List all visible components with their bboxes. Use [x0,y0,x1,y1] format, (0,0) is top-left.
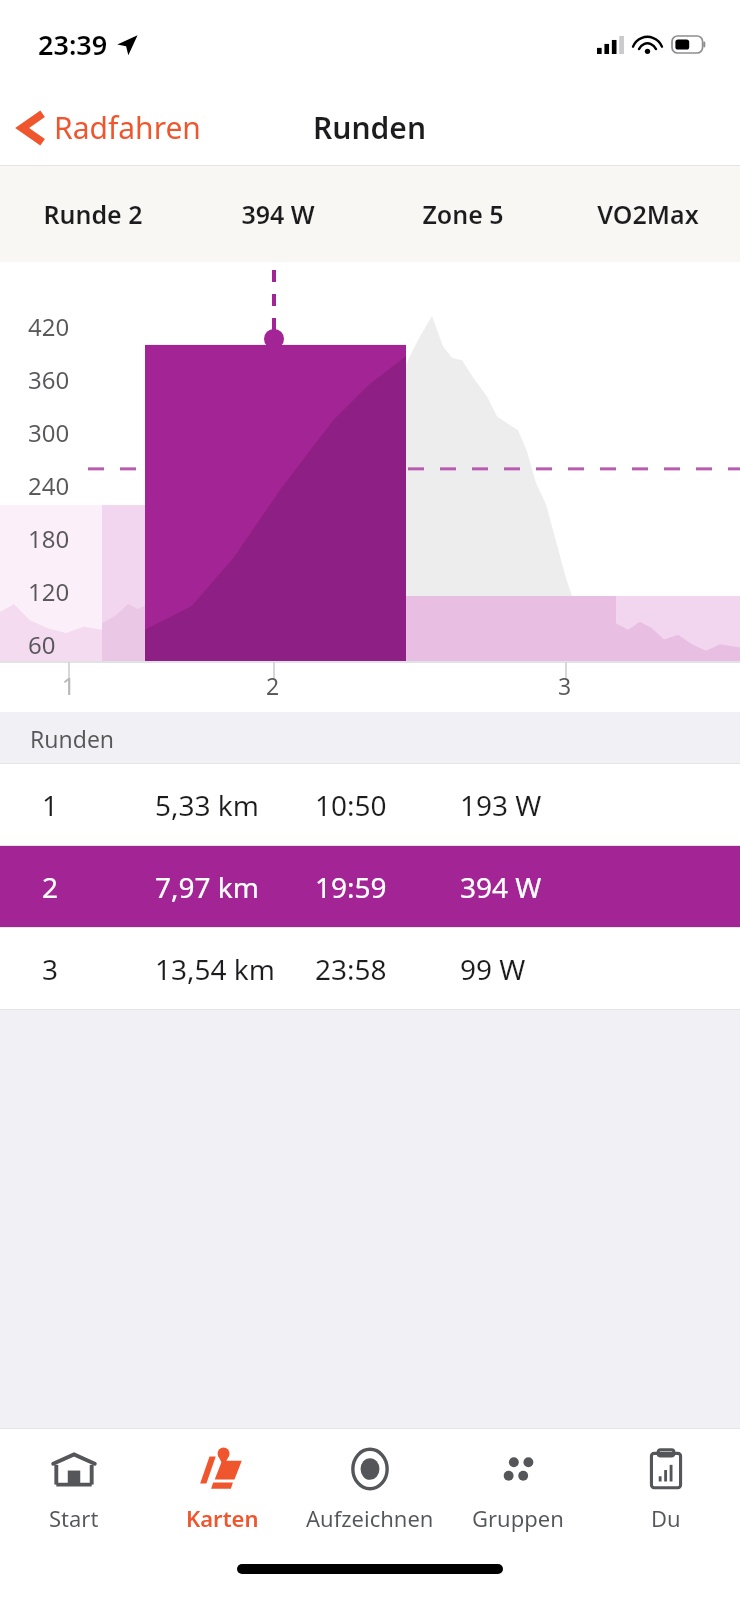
button[interactable]: Aufzeichnen [296,1429,444,1533]
button[interactable]: 2 [0,846,740,927]
staticText: 120 [28,575,70,608]
button[interactable]: Du [592,1429,740,1533]
staticText: 2 [266,670,280,701]
staticText: Gruppen [472,1503,564,1533]
staticText: 394 W [241,197,315,231]
staticText: 2 [42,868,59,906]
button[interactable]: Karten [148,1429,296,1533]
staticText: 23:58 [315,950,387,988]
staticText: Du [651,1503,681,1533]
staticText: 99 W [460,950,526,988]
button[interactable]: Radfahren [0,99,215,156]
staticText: Runden [30,723,115,754]
staticText: 180 [28,522,70,555]
button[interactable]: Start [0,1429,148,1533]
staticText: 23:39 [38,26,108,63]
staticText: 19:59 [315,868,387,906]
staticText: 360 [28,363,70,396]
staticText: 300 [28,416,70,449]
other: Du [640,1443,692,1495]
other: Gruppen [492,1443,544,1495]
staticText: 394 W [460,868,542,906]
staticText: Radfahren [54,107,201,148]
staticText: 1 [62,670,76,701]
other: Aufzeichnen [344,1443,396,1495]
staticText: 240 [28,469,70,502]
staticText: 3 [42,950,59,988]
staticText: 7,97 km [155,868,259,906]
staticText: 60 [28,628,56,661]
staticText: Runden [313,107,427,148]
staticText: 1 [42,786,59,824]
staticText: 193 W [460,786,542,824]
button[interactable]: 3 [0,928,740,1009]
staticText: 5,33 km [155,786,259,824]
staticText: 13,54 km [155,950,275,988]
staticText: VO2Max [597,197,699,231]
staticText: Karten [186,1503,259,1533]
staticText: Start [49,1503,99,1533]
staticText: 420 [28,310,70,343]
button[interactable]: 1 [0,764,740,845]
staticText: Runde 2 [43,197,143,231]
staticText: 10:50 [315,786,387,824]
other: Start [48,1443,100,1495]
other: Karten [196,1443,248,1495]
staticText: Aufzeichnen [306,1503,434,1533]
staticText: 3 [558,670,572,701]
button[interactable]: Gruppen [444,1429,592,1533]
staticText: Zone 5 [422,197,504,231]
